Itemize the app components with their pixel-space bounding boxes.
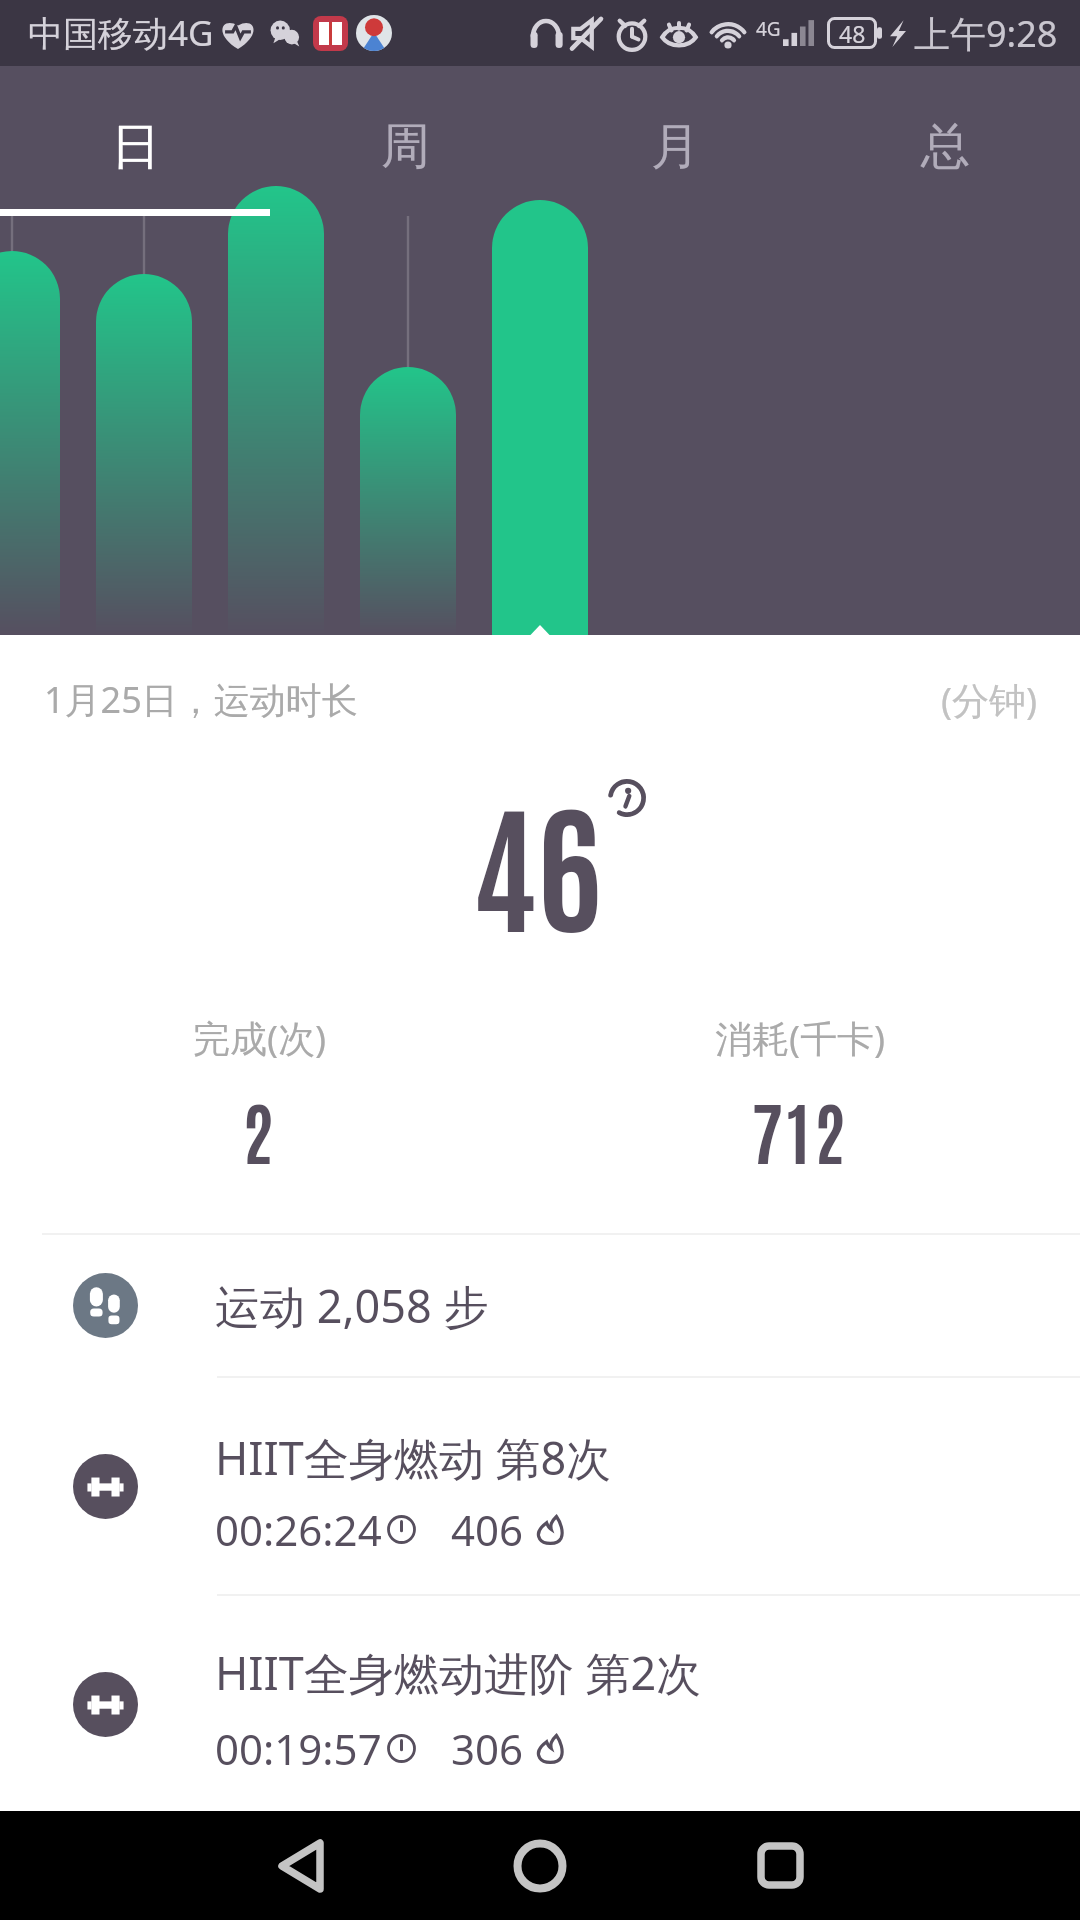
button[interactable]: Back <box>240 1811 360 1920</box>
staticText: HIIT全身燃动进阶 第2次 <box>215 1642 702 1703</box>
button[interactable] <box>0 1596 1080 1812</box>
button[interactable]: Info <box>608 779 646 817</box>
button[interactable]: Home <box>480 1811 600 1920</box>
button[interactable]: 周 <box>270 66 540 216</box>
staticText: 完成(次) <box>193 1012 327 1060</box>
staticText: 上午9:28 <box>914 9 1058 58</box>
staticText: 48 <box>839 18 866 49</box>
staticText: 00:19:57 <box>215 1720 382 1777</box>
staticText: 运动 2,058 步 <box>215 1275 489 1336</box>
staticText: 1月25日，运动时长 <box>44 675 358 724</box>
button[interactable]: 日 <box>0 66 270 216</box>
staticText: 406 <box>451 1501 524 1558</box>
staticText: (分钟) <box>941 674 1038 724</box>
button[interactable]: 运动 2,058 步 <box>0 1235 1080 1376</box>
staticText: 00:26:24 <box>215 1501 382 1558</box>
staticText: 消耗(千卡) <box>715 1012 886 1060</box>
button[interactable]: 总 <box>810 66 1080 216</box>
button[interactable] <box>0 1378 1080 1594</box>
staticText: HIIT全身燃动 第8次 <box>215 1427 612 1488</box>
button[interactable]: Recent apps <box>720 1811 840 1920</box>
button[interactable]: 月 <box>540 66 810 216</box>
staticText: 中国移动4G <box>28 9 214 57</box>
staticText: 周 <box>381 116 430 178</box>
staticText: 2 <box>242 1084 279 1173</box>
staticText: 4G <box>756 16 781 42</box>
staticText: 46 <box>472 770 603 951</box>
staticText: 306 <box>451 1720 524 1777</box>
staticText: 日 <box>111 116 160 178</box>
staticText: 712 <box>751 1084 850 1173</box>
staticText: 月 <box>651 116 700 178</box>
staticText: 总 <box>921 116 970 178</box>
